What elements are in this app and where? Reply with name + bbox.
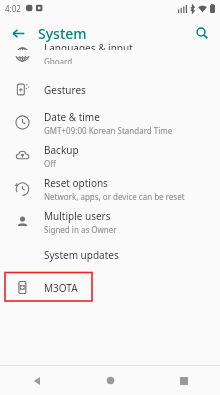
button[interactable]: Home: [74, 366, 147, 395]
staticText: Multiple users: [44, 209, 111, 223]
button[interactable]: Languages & input: [0, 50, 220, 73]
staticText: GMT+09:00 Korean Standard Time: [44, 125, 173, 136]
button[interactable]: Reset options: [0, 172, 220, 205]
staticText: 4:02: [5, 3, 21, 14]
button[interactable]: Date & time: [0, 106, 220, 139]
button[interactable]: Backup: [0, 139, 220, 172]
staticText: Date & time: [44, 110, 100, 124]
staticText: M3OTA: [44, 281, 78, 295]
button[interactable]: Recent apps: [147, 366, 220, 395]
staticText: System updates: [44, 248, 119, 262]
staticText: Gboard: [44, 56, 73, 64]
button[interactable]: M3OTA: [0, 271, 220, 304]
staticText: Network, apps, or device can be reset: [44, 191, 185, 202]
staticText: Gestures: [44, 83, 86, 97]
button[interactable]: Back: [6, 21, 30, 45]
staticText: Signed in as Owner: [44, 224, 117, 235]
button[interactable]: Back: [0, 366, 74, 395]
button[interactable]: Gestures: [0, 73, 220, 106]
button[interactable]: Search: [190, 21, 214, 45]
staticText: Backup: [44, 143, 79, 157]
button[interactable]: Multiple users: [0, 205, 220, 238]
staticText: Off: [44, 158, 56, 169]
button[interactable]: System updates: [0, 238, 220, 271]
staticText: System: [38, 24, 87, 43]
staticText: Languages & input: [44, 41, 133, 55]
staticText: Reset options: [44, 176, 108, 190]
